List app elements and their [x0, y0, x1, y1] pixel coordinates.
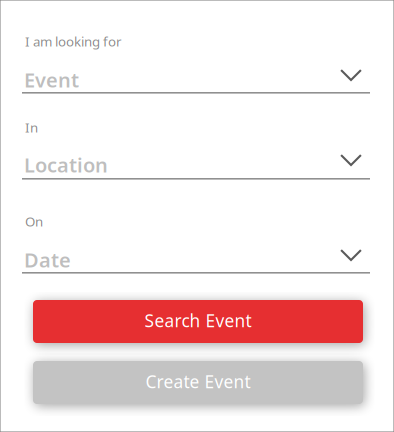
staticText: On — [25, 212, 43, 230]
staticText: Date — [24, 246, 71, 273]
staticText: Location — [24, 151, 108, 178]
staticText: In — [25, 118, 38, 136]
button[interactable]: In — [22, 117, 370, 184]
staticText: Create Event — [145, 370, 250, 393]
button[interactable]: Search Event — [33, 300, 363, 343]
staticText: I am looking for — [25, 32, 122, 50]
staticText: Event — [24, 66, 79, 93]
button[interactable]: I am looking for — [22, 31, 370, 98]
staticText: Search Event — [144, 309, 251, 332]
button[interactable]: Create Event — [33, 361, 363, 404]
button[interactable]: On — [22, 211, 370, 278]
